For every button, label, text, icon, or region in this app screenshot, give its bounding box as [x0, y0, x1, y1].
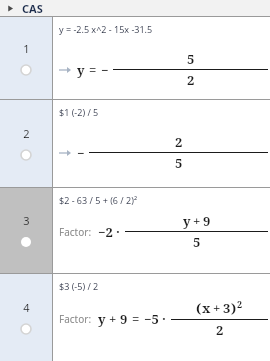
staticText: 4 — [23, 300, 30, 315]
staticText: 2 — [216, 321, 224, 339]
staticText: $2 - 63 / 5 + (6 / 2)² — [59, 194, 138, 206]
staticText: + — [213, 299, 221, 317]
other: Expand CAS — [6, 4, 15, 13]
staticText: · — [162, 310, 166, 328]
staticText: y — [77, 61, 85, 79]
staticText: 5 — [193, 233, 201, 251]
staticText: 5 — [175, 154, 183, 172]
staticText: 2 — [23, 126, 30, 141]
button[interactable]: Expand CAS — [0, 0, 270, 17]
button[interactable]: 2 — [0, 100, 270, 187]
button[interactable]: 4 — [0, 274, 270, 361]
staticText: 5 — [187, 50, 195, 68]
staticText: · — [116, 223, 120, 241]
staticText: − — [77, 144, 85, 162]
staticText: $1 (-2) / 5 — [59, 106, 99, 118]
staticText: ) — [231, 299, 237, 317]
staticText: $3 (-5) / 2 — [59, 280, 99, 292]
staticText: −2 — [98, 223, 113, 241]
staticText: + — [109, 310, 117, 328]
staticText: 3 — [23, 213, 30, 228]
button[interactable]: 3 — [0, 188, 52, 273]
staticText: 9 — [120, 310, 128, 328]
button[interactable]: 3 — [0, 188, 270, 273]
staticText: Factor: — [59, 312, 92, 326]
staticText: x — [202, 299, 211, 317]
staticText: 3 — [223, 299, 231, 317]
staticText: 2 — [187, 71, 195, 89]
staticText: −5 — [144, 310, 159, 328]
staticText: 2 — [175, 133, 183, 151]
staticText: y = -2.5 x^2 - 15x -31.5 — [59, 23, 153, 35]
staticText: − — [101, 61, 109, 79]
staticText: 1 — [23, 41, 30, 56]
staticText: y — [183, 212, 191, 230]
button[interactable]: 1 — [0, 17, 270, 99]
staticText: = — [132, 310, 140, 328]
staticText: y — [98, 310, 106, 328]
staticText: + — [193, 212, 201, 230]
staticText: CAS — [22, 1, 43, 16]
button[interactable]: 4 — [0, 274, 52, 361]
staticText: = — [89, 61, 97, 79]
staticText: 9 — [203, 212, 211, 230]
button[interactable]: 2 — [0, 100, 52, 187]
staticText: ( — [196, 299, 202, 317]
staticText: 2 — [237, 298, 243, 310]
button[interactable]: 1 — [0, 17, 52, 99]
staticText: Factor: — [59, 225, 92, 239]
